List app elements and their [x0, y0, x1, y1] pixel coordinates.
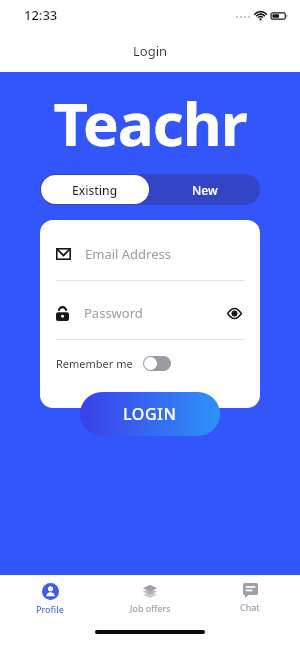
- staticText: Chat: [240, 601, 260, 613]
- staticText: Password: [84, 304, 143, 322]
- staticText: Teachr: [0, 82, 300, 164]
- button[interactable]: New: [150, 174, 260, 205]
- button[interactable]: Chat: [204, 575, 296, 623]
- staticText: Existing: [72, 182, 118, 198]
- staticText: Email Address: [85, 245, 171, 263]
- button[interactable]: Job offers: [104, 575, 196, 623]
- button[interactable]: LOGIN: [80, 392, 220, 436]
- staticText: Profile: [36, 603, 64, 615]
- button[interactable]: Show password: [224, 303, 244, 323]
- button[interactable]: Remember me: [56, 356, 244, 371]
- button[interactable]: Existing: [41, 175, 149, 204]
- staticText: Remember me: [56, 356, 133, 371]
- staticText: New: [192, 182, 218, 198]
- staticText: Login: [133, 42, 168, 60]
- staticText: 12:33: [24, 6, 58, 24]
- staticText: Job offers: [130, 602, 171, 614]
- staticText: LOGIN: [123, 403, 177, 425]
- button[interactable]: Profile: [4, 575, 96, 623]
